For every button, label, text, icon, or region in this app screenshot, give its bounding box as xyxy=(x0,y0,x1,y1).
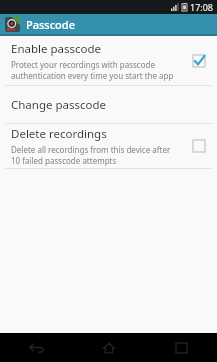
button[interactable]: Unchecked xyxy=(190,137,208,155)
staticText: Protect your recordings with passcode xyxy=(11,59,155,70)
staticText: 17:08 xyxy=(190,1,214,13)
staticText: 10 failed passcode attempts xyxy=(11,155,117,166)
button[interactable]: Enable passcode xyxy=(0,36,217,85)
staticText: Passcode xyxy=(26,17,75,32)
staticText: Enable passcode xyxy=(11,41,102,57)
button[interactable]: Passcode xyxy=(0,14,217,34)
button[interactable]: Back xyxy=(0,333,73,362)
button[interactable]: Home xyxy=(73,333,145,362)
button[interactable]: Change passcode xyxy=(0,86,217,123)
button[interactable]: Recent apps xyxy=(145,333,217,362)
button[interactable]: Checked xyxy=(190,52,208,70)
button[interactable]: Delete recordings xyxy=(0,124,217,168)
staticText: Delete all recordings from this device a… xyxy=(11,144,171,155)
staticText: Delete recordings xyxy=(11,126,107,142)
staticText: Change passcode xyxy=(11,97,107,113)
staticText: authentication every time you start the … xyxy=(11,70,174,81)
